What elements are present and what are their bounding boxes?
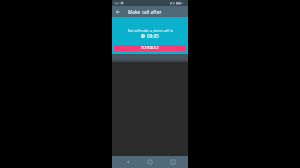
button[interactable]: Back <box>112 6 123 17</box>
button[interactable]: Back <box>121 156 135 168</box>
button[interactable]: Recents <box>166 156 180 168</box>
staticText: SCHEDULE <box>141 46 159 50</box>
staticText: Bot will make a phone call in <box>128 29 173 33</box>
staticText: Make call after <box>128 9 162 15</box>
button[interactable]: Home <box>143 156 157 168</box>
staticText: 00:05 <box>147 33 160 39</box>
button[interactable]: SCHEDULE <box>114 45 186 51</box>
